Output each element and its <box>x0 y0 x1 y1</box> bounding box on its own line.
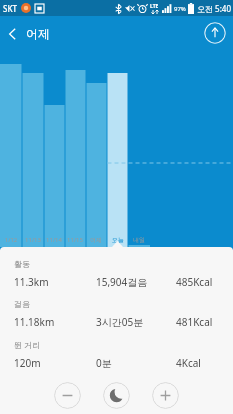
staticText: 뛴 거리 <box>14 339 41 350</box>
button[interactable]: 120m <box>0 352 233 374</box>
button[interactable]: Decrease <box>54 382 81 409</box>
staticText: 어제 <box>83 236 109 244</box>
button[interactable]: 11.3km <box>0 271 233 293</box>
staticText: 97% <box>174 5 186 13</box>
staticText: 오늘 <box>105 236 131 244</box>
other: Back <box>8 27 17 41</box>
staticText: 활동 <box>14 259 30 269</box>
button[interactable]: Back <box>0 20 58 47</box>
staticText: 걸음 <box>14 299 30 309</box>
staticText: 3시간05분 <box>96 315 144 329</box>
staticText: 485Kcal <box>176 275 213 289</box>
staticText: 15,904걸음 <box>96 275 148 289</box>
staticText: 11/15 <box>62 236 88 244</box>
staticText: SKT <box>3 3 17 14</box>
staticText: 0분 <box>96 356 112 370</box>
staticText: 1/12 <box>0 236 24 244</box>
staticText: 4Kcal <box>176 356 201 370</box>
staticText: 11/14 <box>41 236 67 244</box>
staticText: 120m <box>14 356 41 370</box>
staticText: 11/13 <box>20 236 46 244</box>
button[interactable]: Share <box>204 22 226 44</box>
staticText: 481Kcal <box>176 315 213 329</box>
staticText: 어제 <box>26 26 50 41</box>
staticText: 내일 <box>126 236 152 244</box>
staticText: LTE <box>150 3 159 10</box>
button[interactable]: 11.18km <box>0 311 233 333</box>
staticText: 11.3km <box>14 275 49 289</box>
staticText: 오전 5:40 <box>197 3 231 14</box>
staticText: 11.18km <box>14 315 55 329</box>
button[interactable]: Sleep <box>103 382 130 409</box>
button[interactable]: Increase <box>152 382 179 409</box>
